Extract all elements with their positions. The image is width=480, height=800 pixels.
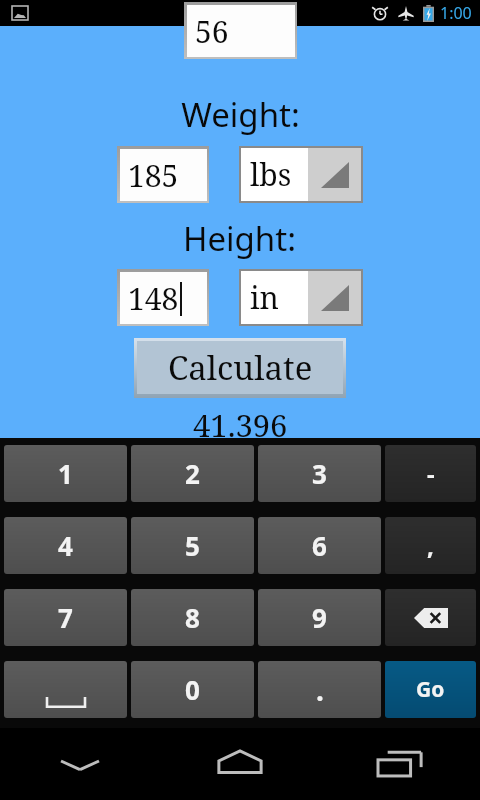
button[interactable]: 6 bbox=[258, 517, 381, 574]
staticText: Calculate bbox=[168, 345, 313, 390]
button[interactable]: 7 bbox=[4, 589, 127, 646]
staticText: 2 bbox=[185, 456, 200, 491]
button[interactable]: 5 bbox=[131, 517, 254, 574]
staticText: in bbox=[250, 277, 279, 318]
staticText: , bbox=[427, 529, 434, 562]
staticText: 41.396 bbox=[193, 404, 288, 438]
staticText: Weight: bbox=[181, 92, 300, 137]
button[interactable]: Recent apps bbox=[320, 728, 480, 800]
button[interactable]: - bbox=[385, 445, 476, 502]
button[interactable]: , bbox=[385, 517, 476, 574]
staticText: lbs bbox=[250, 154, 292, 195]
staticText: 3 bbox=[312, 456, 327, 491]
staticText: 5 bbox=[185, 528, 200, 563]
button[interactable]: in bbox=[241, 271, 361, 324]
button[interactable]: 1 bbox=[4, 445, 127, 502]
staticText: Height: bbox=[183, 216, 297, 261]
button[interactable]: Backspace bbox=[385, 589, 476, 646]
button[interactable]: Go bbox=[385, 661, 476, 718]
button[interactable]: lbs bbox=[241, 148, 361, 201]
staticText: 6 bbox=[312, 528, 327, 563]
staticText: 0 bbox=[185, 672, 200, 707]
staticText: 185 bbox=[128, 155, 179, 196]
button[interactable]: Space bbox=[4, 661, 127, 718]
staticText: Go bbox=[416, 675, 445, 704]
staticText: 8 bbox=[185, 600, 200, 635]
staticText: - bbox=[427, 457, 435, 490]
button[interactable]: 0 bbox=[131, 661, 254, 718]
staticText: 148 bbox=[128, 278, 179, 319]
button[interactable]: Hide keyboard bbox=[0, 728, 160, 800]
button[interactable]: 2 bbox=[131, 445, 254, 502]
staticText: . bbox=[316, 671, 324, 709]
staticText: 9 bbox=[312, 600, 327, 635]
button[interactable]: 3 bbox=[258, 445, 381, 502]
button[interactable]: Calculate bbox=[137, 341, 343, 394]
button[interactable]: Home bbox=[160, 728, 320, 800]
button[interactable]: 56 bbox=[187, 5, 295, 57]
staticText: 1:00 bbox=[440, 2, 472, 24]
button[interactable]: 4 bbox=[4, 517, 127, 574]
button[interactable]: 185 bbox=[120, 149, 207, 201]
staticText: 1 bbox=[58, 456, 73, 491]
button[interactable]: 8 bbox=[131, 589, 254, 646]
button[interactable]: . bbox=[258, 661, 381, 718]
button[interactable]: 148 bbox=[120, 272, 207, 324]
staticText: 7 bbox=[58, 600, 73, 635]
button[interactable]: 9 bbox=[258, 589, 381, 646]
staticText: 4 bbox=[58, 528, 73, 563]
staticText: 56 bbox=[195, 11, 229, 52]
